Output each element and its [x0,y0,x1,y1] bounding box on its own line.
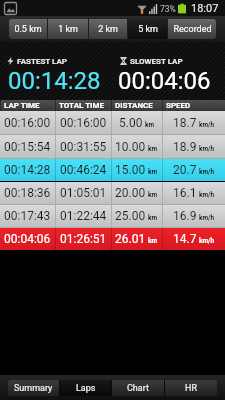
staticText: 00:16:00 [4,116,51,130]
button[interactable]: 00:14:28 [0,159,225,181]
staticText: FASTEST LAP [17,57,68,66]
staticText: DISTANCE [115,101,153,110]
staticText: km/h [199,168,215,176]
staticText: 00:15:54 [4,140,51,154]
button[interactable]: Chart [112,380,164,396]
staticText: km [145,121,155,129]
staticText: 18.9 [173,140,197,154]
button[interactable]: Laps [60,380,111,396]
staticText: 73% [160,4,176,14]
button[interactable]: 00:16:00 [0,111,225,134]
staticText: km/h [199,214,215,222]
staticText: 00:18:36 [4,186,51,200]
staticText: 15.00 [115,163,146,177]
staticText: 00:04:06 [4,232,51,246]
staticText: km [148,214,158,222]
staticText: 16.9 [173,209,197,223]
staticText: Laps [76,383,96,394]
staticText: 0.5 km [14,24,42,35]
staticText: 5.00 [119,116,143,130]
staticText: 00:14:28 [8,67,101,95]
staticText: km/h [199,145,215,153]
button[interactable]: 1 km [48,19,88,39]
staticText: LAP TIME [4,101,40,110]
staticText: 00:04:06 [118,67,211,95]
staticText: 2 km [98,24,118,35]
staticText: 01:05:01 [60,186,107,200]
staticText: 01:22:44 [60,209,107,223]
staticText: Chart [127,383,149,394]
button[interactable]: 00:17:43 [0,205,225,227]
staticText: TOTAL TIME [59,101,104,110]
staticText: 16.1 [173,186,197,200]
button[interactable]: 00:04:06 [0,228,225,250]
staticText: 18:07 [191,2,219,15]
button[interactable]: HR [165,380,217,396]
button[interactable]: 00:15:54 [0,135,225,158]
other: Screenshot [4,2,17,15]
staticText: 00:17:43 [4,209,51,223]
staticText: SPEED [166,101,191,110]
staticText: km [148,145,158,153]
staticText: km [148,237,158,245]
staticText: Recorded [173,24,212,35]
button[interactable]: Recorded [168,19,216,39]
staticText: 25.00 [115,209,146,223]
staticText: km [148,168,158,176]
staticText: 18.7 [173,116,197,130]
staticText: 00:16:00 [60,116,107,130]
staticText: 00:14:28 [4,163,51,177]
staticText: 26.01 [115,232,146,246]
button[interactable]: Summary [8,380,59,396]
button[interactable]: 5 km [128,19,167,39]
staticText: Summary [14,383,53,394]
staticText: 14.7 [173,232,197,246]
staticText: 00:46:24 [60,163,107,177]
button[interactable]: 00:18:36 [0,182,225,204]
button[interactable]: 2 km [89,19,127,39]
staticText: 1 km [58,24,78,35]
staticText: km/h [199,121,215,129]
staticText: km/h [199,191,215,199]
staticText: 10.00 [115,140,146,154]
staticText: 20.00 [115,186,146,200]
staticText: 20.7 [173,163,197,177]
staticText: HR [185,383,197,394]
staticText: 00:31:55 [60,140,107,154]
staticText: km/h [199,237,215,245]
staticText: SLOWEST LAP [130,57,183,66]
staticText: km [148,191,158,199]
button[interactable]: 0.5 km [9,19,47,39]
staticText: 01:26:51 [60,232,107,246]
staticText: 5 km [138,24,158,35]
